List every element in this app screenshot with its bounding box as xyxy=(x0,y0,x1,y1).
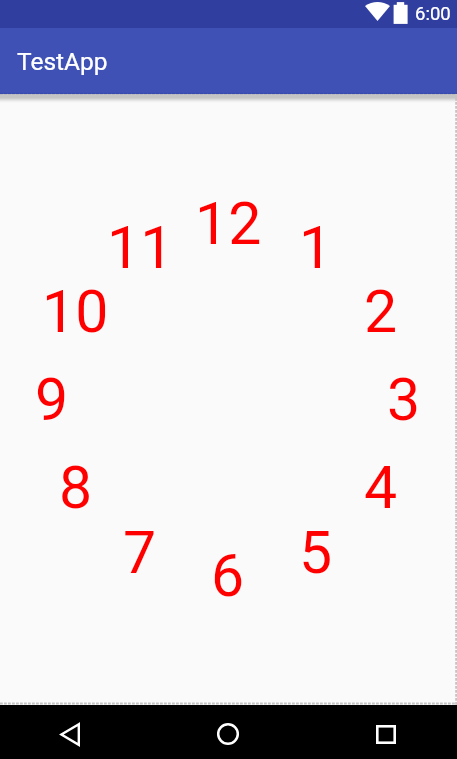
staticText: 5 xyxy=(299,518,333,587)
button[interactable]: Recent apps xyxy=(334,705,437,759)
staticText: 12 xyxy=(195,189,262,258)
staticText: 3 xyxy=(387,365,421,434)
staticText: TestApp xyxy=(17,47,108,76)
staticText: 10 xyxy=(42,277,109,346)
button[interactable]: Home xyxy=(176,705,279,759)
staticText: 6 xyxy=(211,541,245,610)
staticText: 6:00 xyxy=(415,3,451,25)
staticText: 7 xyxy=(123,518,157,587)
button[interactable]: Back xyxy=(18,705,121,759)
staticText: 2 xyxy=(364,277,398,346)
staticText: 4 xyxy=(364,453,398,522)
staticText: 9 xyxy=(35,365,69,434)
staticText: 8 xyxy=(59,453,93,522)
staticText: 1 xyxy=(299,213,333,282)
staticText: 11 xyxy=(107,213,174,282)
other: Battery xyxy=(393,2,408,23)
other: Wi-Fi xyxy=(365,3,390,21)
